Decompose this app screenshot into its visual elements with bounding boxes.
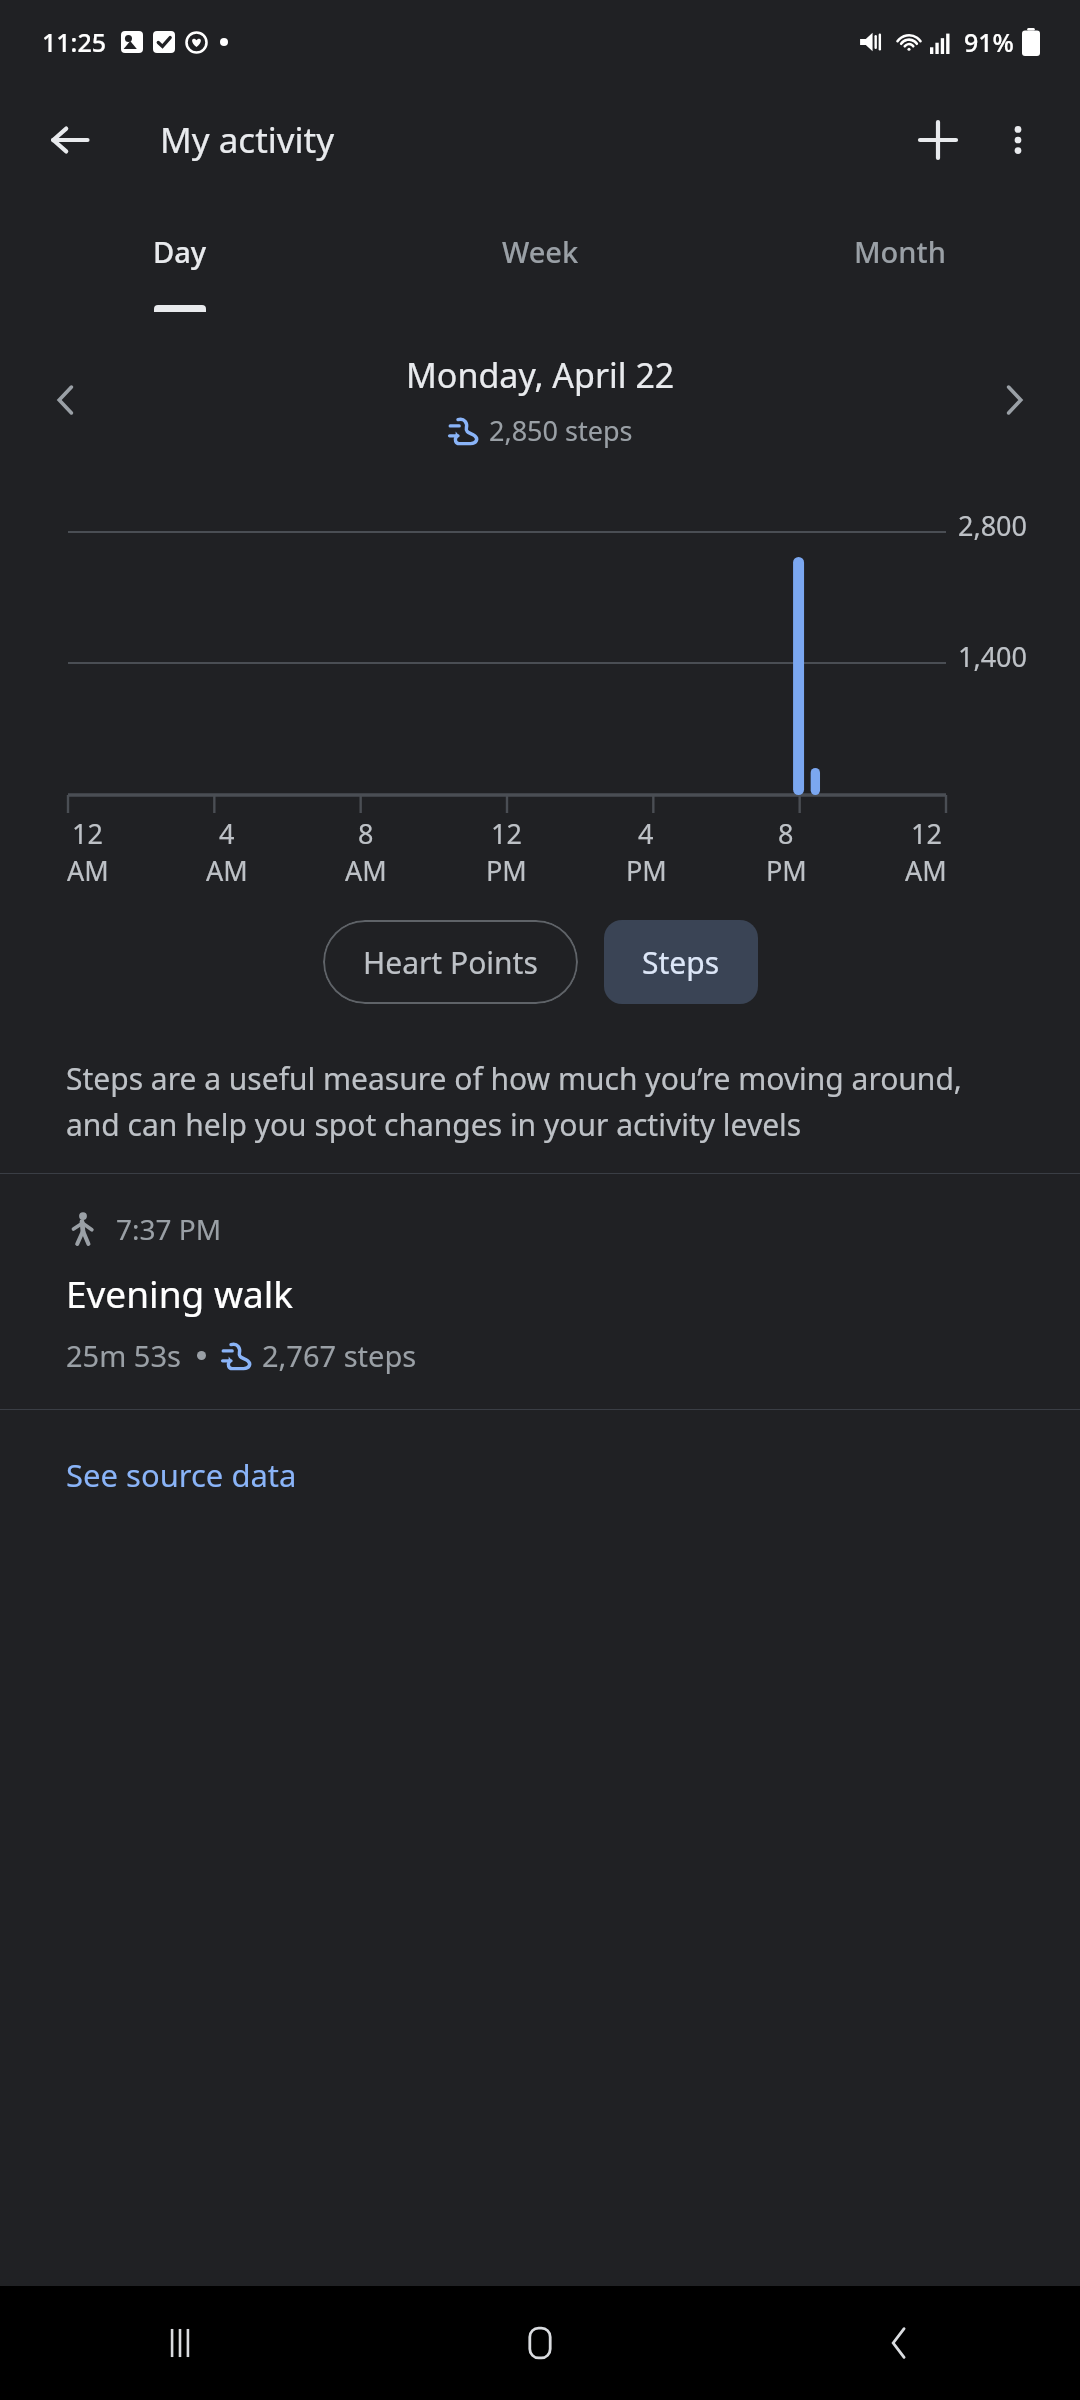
- staticText: 2,800: [958, 507, 1028, 544]
- staticText: Heart Points: [363, 942, 538, 983]
- button[interactable]: Back: [30, 100, 110, 180]
- staticText: 11:25: [42, 25, 107, 59]
- staticText: 1,400: [958, 638, 1028, 675]
- staticText: 7:37 PM: [116, 1210, 222, 1248]
- staticText: Day: [153, 232, 207, 271]
- staticText: AM: [206, 852, 248, 889]
- button[interactable]: Add: [898, 100, 978, 180]
- button[interactable]: Heart Points: [323, 920, 578, 1004]
- button[interactable]: 7:37 PM: [0, 1174, 1080, 1409]
- staticText: 8: [778, 815, 794, 852]
- button[interactable]: Week: [360, 196, 720, 320]
- staticText: Steps are a useful measure of how much y…: [66, 1058, 1020, 1145]
- button[interactable]: Next day: [974, 360, 1054, 440]
- staticText: 2,767 steps: [262, 1336, 417, 1375]
- button[interactable]: Steps: [604, 920, 758, 1004]
- button[interactable]: Home: [360, 2286, 720, 2400]
- staticText: 12: [491, 815, 522, 852]
- staticText: 4: [638, 815, 654, 852]
- staticText: AM: [905, 852, 947, 889]
- button[interactable]: Day: [0, 196, 360, 320]
- staticText: PM: [486, 852, 527, 889]
- staticText: 4: [219, 815, 235, 852]
- staticText: 8: [358, 815, 374, 852]
- staticText: Week: [502, 232, 579, 271]
- button[interactable]: Month: [720, 196, 1080, 320]
- staticText: 12: [72, 815, 103, 852]
- staticText: AM: [67, 852, 109, 889]
- staticText: See source data: [66, 1454, 297, 1496]
- staticText: AM: [345, 852, 387, 889]
- staticText: Monday, April 22: [406, 352, 675, 398]
- button[interactable]: Back: [720, 2286, 1080, 2400]
- staticText: My activity: [160, 116, 335, 164]
- staticText: Evening walk: [66, 1268, 294, 1318]
- button[interactable]: More options: [978, 100, 1058, 180]
- button[interactable]: See source data: [0, 1410, 1080, 1540]
- staticText: 25m 53s: [66, 1336, 181, 1375]
- staticText: 91%: [964, 25, 1014, 59]
- staticText: PM: [626, 852, 667, 889]
- staticText: 2,850 steps: [489, 412, 633, 449]
- staticText: 12: [911, 815, 942, 852]
- button[interactable]: Recent apps: [0, 2286, 360, 2400]
- button[interactable]: Previous day: [26, 360, 106, 440]
- staticText: Month: [854, 232, 946, 271]
- staticText: Steps: [642, 942, 720, 983]
- staticText: PM: [766, 852, 807, 889]
